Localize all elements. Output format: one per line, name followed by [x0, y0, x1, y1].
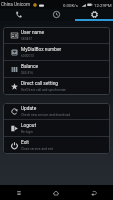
button[interactable]: Recents — [37, 9, 75, 21]
button[interactable]: Home — [37, 185, 75, 200]
button[interactable]: Direct call setting — [3, 78, 110, 95]
staticText: 0.00K/s — [63, 3, 79, 8]
staticText: Update — [21, 106, 37, 112]
staticText: 12:29PM — [94, 3, 112, 8]
staticText: MyDialBox number — [21, 47, 62, 53]
staticText: Check new version and download — [21, 113, 70, 117]
staticText: Close service and exit — [21, 147, 53, 151]
staticText: User name — [21, 30, 44, 36]
button[interactable]: Menu — [0, 185, 37, 200]
button[interactable]: Back — [75, 185, 113, 200]
button[interactable]: MyDialBox number — [3, 44, 110, 61]
button[interactable]: Exit — [3, 137, 110, 154]
button[interactable]: Logout — [3, 120, 110, 137]
staticText: Exit — [21, 140, 29, 146]
button[interactable]: Balance — [3, 61, 110, 78]
staticText: China Unicom — [1, 2, 31, 8]
button[interactable]: User name — [3, 27, 110, 44]
staticText: Re-login — [21, 130, 33, 134]
staticText: Set Direct call and synchronize — [21, 88, 66, 92]
button[interactable]: Update — [3, 103, 110, 120]
staticText: 6000013 — [21, 54, 34, 58]
button[interactable]: Settings — [75, 9, 113, 21]
staticText: Balance — [21, 64, 39, 70]
staticText: $45.816 — [21, 71, 33, 75]
staticText: Direct call setting — [21, 81, 59, 87]
staticText: 583457 — [21, 37, 33, 41]
staticText: Logout — [21, 123, 36, 129]
button[interactable]: Dialer — [0, 9, 37, 21]
